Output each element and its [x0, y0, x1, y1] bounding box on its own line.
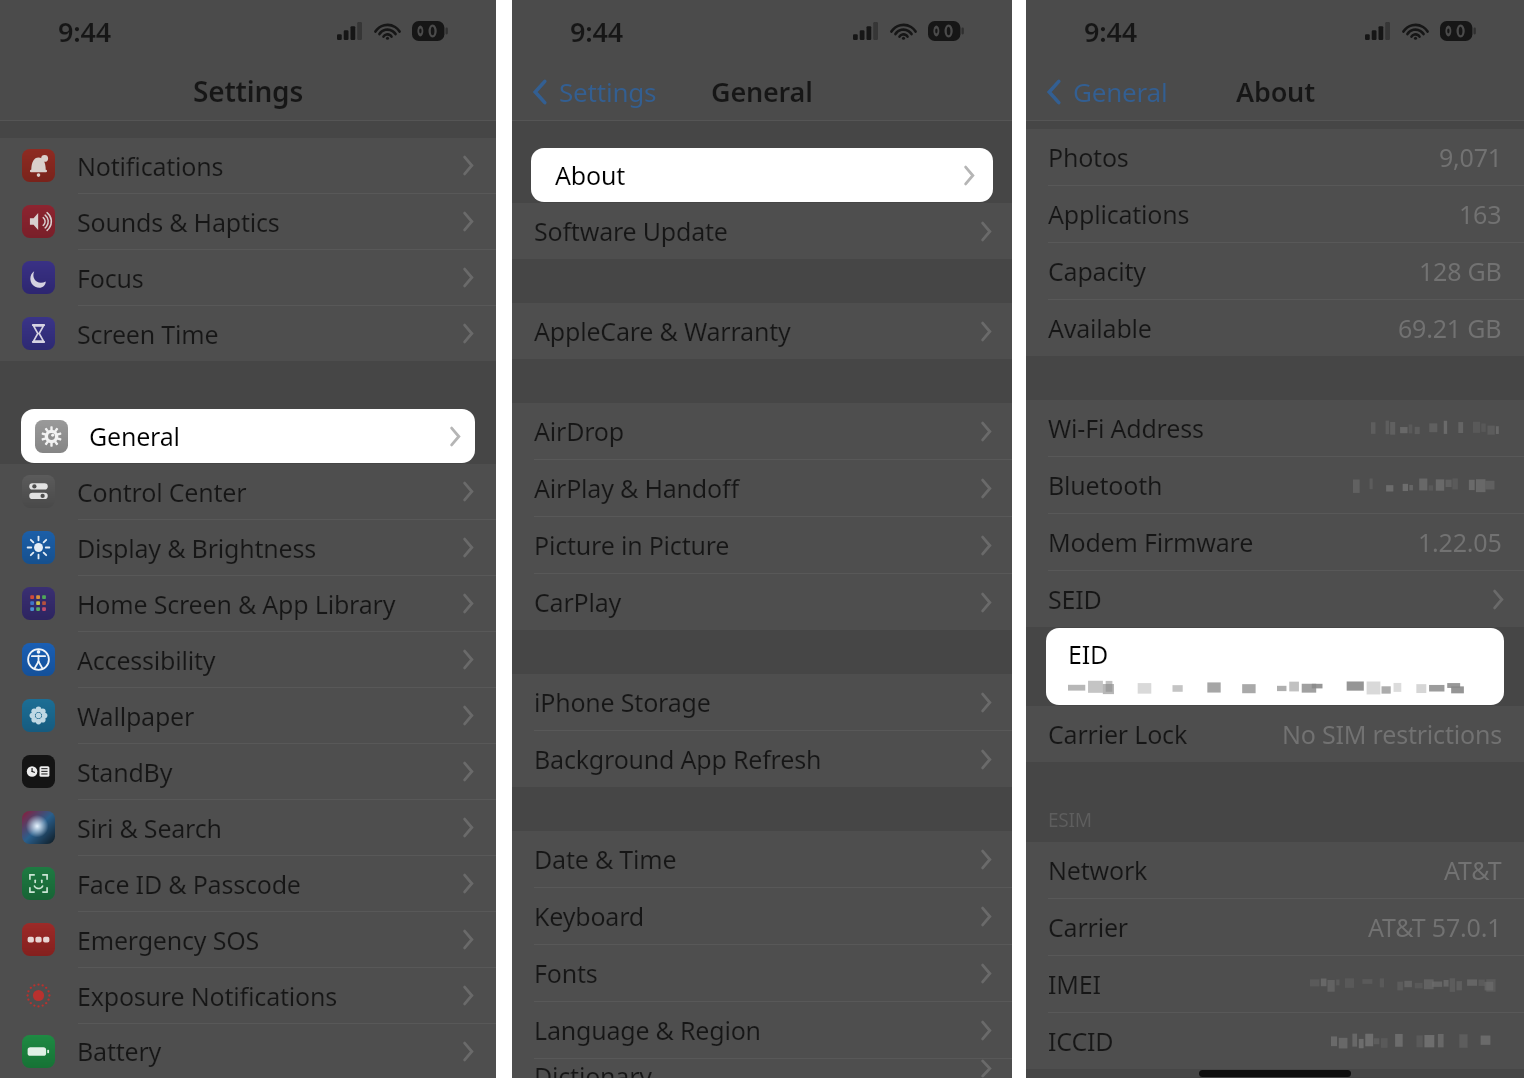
staticText: Language & Region — [534, 1013, 980, 1047]
button[interactable]: Applications — [1026, 186, 1524, 242]
button[interactable]: Wi-Fi Address — [1026, 400, 1524, 456]
button[interactable]: AirDrop — [512, 403, 1012, 459]
button[interactable]: General — [21, 409, 475, 463]
button[interactable]: Display & Brightness — [0, 520, 496, 575]
staticText: Control Center — [77, 475, 462, 509]
staticText: Exposure Notifications — [77, 979, 462, 1013]
staticText: 163 — [1459, 197, 1502, 231]
button[interactable]: Control Center — [0, 464, 496, 519]
button[interactable]: Network — [1026, 842, 1524, 898]
staticText: AT&T — [1444, 853, 1502, 887]
staticText: Wi-Fi Address — [1048, 411, 1204, 445]
button[interactable]: Carrier — [1026, 899, 1524, 955]
staticText: Notifications — [77, 149, 462, 183]
staticText: Face ID & Passcode — [77, 867, 462, 901]
staticText: Settings — [559, 74, 657, 109]
button[interactable]: AppleCare & Warranty — [512, 303, 1012, 359]
button[interactable]: Dictionary — [512, 1059, 1012, 1078]
staticText: 9:44 — [570, 13, 623, 50]
staticText: iPhone Storage — [534, 685, 980, 719]
staticText: AT&T 57.0.1 — [1368, 910, 1502, 944]
button[interactable]: Notifications — [0, 138, 496, 193]
staticText: Siri & Search — [77, 811, 462, 845]
staticText: ICCID — [1048, 1024, 1114, 1058]
button[interactable]: Wallpaper — [0, 688, 496, 743]
button[interactable]: SEID — [1026, 571, 1524, 627]
button[interactable]: CarPlay — [512, 574, 1012, 630]
button[interactable]: Back to General — [1038, 66, 1176, 117]
button[interactable]: EID — [1046, 628, 1504, 705]
staticText: CarPlay — [534, 585, 980, 619]
staticText: Bluetooth — [1048, 468, 1163, 502]
staticText: Date & Time — [534, 842, 980, 876]
button[interactable]: Focus — [0, 250, 496, 305]
staticText: 1.22.05 — [1418, 525, 1502, 559]
staticText: General — [711, 73, 813, 110]
button[interactable]: Bluetooth — [1026, 457, 1524, 513]
button[interactable]: Keyboard — [512, 888, 1012, 944]
button[interactable]: Fonts — [512, 945, 1012, 1001]
staticText: Battery — [77, 1034, 462, 1068]
button[interactable]: Battery — [0, 1024, 496, 1078]
staticText: Accessibility — [77, 643, 462, 677]
staticText: Focus — [77, 261, 462, 295]
staticText: Emergency SOS — [77, 923, 462, 957]
button[interactable]: Exposure Notifications — [0, 968, 496, 1023]
staticText: Carrier Lock — [1048, 717, 1188, 751]
button[interactable]: Capacity — [1026, 243, 1524, 299]
button[interactable]: Modem Firmware — [1026, 514, 1524, 570]
button[interactable]: Picture in Picture — [512, 517, 1012, 573]
staticText: Wallpaper — [77, 699, 462, 733]
staticText: 128 GB — [1419, 254, 1502, 288]
staticText: EID — [1068, 637, 1109, 671]
button[interactable]: Screen Time — [0, 306, 496, 361]
staticText: About — [555, 158, 963, 192]
staticText: Sounds & Haptics — [77, 205, 462, 239]
staticText: Screen Time — [77, 317, 462, 351]
staticText: Modem Firmware — [1048, 525, 1254, 559]
staticText: Background App Refresh — [534, 742, 980, 776]
staticText: About — [1236, 73, 1315, 110]
button[interactable]: Available — [1026, 300, 1524, 356]
button[interactable]: ICCID — [1026, 1013, 1524, 1069]
staticText: Capacity — [1048, 254, 1146, 288]
staticText: Home Screen & App Library — [77, 587, 462, 621]
button[interactable]: AirPlay & Handoff — [512, 460, 1012, 516]
staticText: Fonts — [534, 956, 980, 990]
button[interactable]: Face ID & Passcode — [0, 856, 496, 911]
staticText: AppleCare & Warranty — [534, 314, 980, 348]
button[interactable]: Language & Region — [512, 1002, 1012, 1058]
staticText: SEID — [1048, 582, 1492, 616]
staticText: Display & Brightness — [77, 531, 462, 565]
staticText: 69.21 GB — [1398, 311, 1502, 345]
staticText: Settings — [193, 72, 304, 110]
staticText: Picture in Picture — [534, 528, 980, 562]
staticText: Carrier — [1048, 910, 1128, 944]
button[interactable]: Carrier Lock — [1026, 706, 1524, 762]
button[interactable]: Home Screen & App Library — [0, 576, 496, 631]
staticText: Keyboard — [534, 899, 980, 933]
staticText: Applications — [1048, 197, 1190, 231]
button[interactable]: iPhone Storage — [512, 674, 1012, 730]
staticText: ESIM — [1048, 807, 1092, 833]
staticText: Available — [1048, 311, 1152, 345]
staticText: IMEI — [1048, 967, 1101, 1001]
staticText: AirPlay & Handoff — [534, 471, 980, 505]
button[interactable]: Siri & Search — [0, 800, 496, 855]
staticText: 9,071 — [1439, 140, 1502, 174]
button[interactable]: Software Update — [512, 203, 1012, 259]
button[interactable]: IMEI — [1026, 956, 1524, 1012]
button[interactable]: About — [531, 148, 993, 202]
staticText: Software Update — [534, 214, 980, 248]
button[interactable]: StandBy — [0, 744, 496, 799]
button[interactable]: Date & Time — [512, 831, 1012, 887]
staticText: AirDrop — [534, 414, 980, 448]
staticText: Photos — [1048, 140, 1129, 174]
button[interactable]: Accessibility — [0, 632, 496, 687]
button[interactable]: Back to Settings — [524, 66, 665, 117]
button[interactable]: Emergency SOS — [0, 912, 496, 967]
staticText: Network — [1048, 853, 1148, 887]
button[interactable]: Photos — [1026, 129, 1524, 185]
button[interactable]: Sounds & Haptics — [0, 194, 496, 249]
button[interactable]: Background App Refresh — [512, 731, 1012, 787]
